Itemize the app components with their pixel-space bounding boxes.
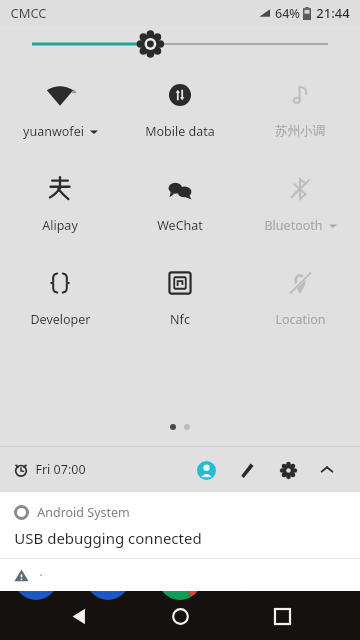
button[interactable]: Edit bbox=[230, 453, 264, 487]
staticText: WeChat bbox=[157, 217, 203, 234]
button[interactable]: Brightness bbox=[0, 26, 360, 62]
staticText: Nfc bbox=[170, 311, 190, 328]
button[interactable]: WeChat bbox=[120, 170, 240, 238]
button[interactable]: Fri 07:00 bbox=[14, 461, 86, 478]
staticText: Fri 07:00 bbox=[35, 461, 86, 478]
staticText: 21:44 bbox=[316, 4, 350, 22]
staticText: USB debugging connected bbox=[14, 528, 202, 548]
button[interactable]: 苏州小调 bbox=[240, 76, 360, 143]
staticText: 苏州小调 bbox=[275, 123, 325, 139]
button[interactable]: Bluetooth bbox=[240, 170, 360, 238]
button[interactable]: yuanwofei bbox=[0, 76, 120, 144]
button[interactable]: Back bbox=[54, 592, 102, 640]
staticText: Bluetooth bbox=[264, 217, 323, 234]
button[interactable]: User bbox=[189, 453, 223, 487]
button[interactable]: Location bbox=[240, 264, 360, 332]
staticText: yuanwofei bbox=[23, 123, 84, 140]
button[interactable]: Android System bbox=[0, 492, 360, 558]
button[interactable]: Recents bbox=[258, 592, 306, 640]
staticText: · bbox=[39, 567, 43, 583]
button[interactable]: Mobile data bbox=[120, 76, 240, 144]
staticText: Location bbox=[275, 311, 326, 328]
staticText: Alipay bbox=[42, 217, 78, 234]
button[interactable]: Settings bbox=[271, 453, 305, 487]
button[interactable]: Developer bbox=[0, 264, 120, 332]
staticText: Mobile data bbox=[145, 123, 215, 140]
button[interactable]: Alipay bbox=[0, 170, 120, 238]
staticText: 64% bbox=[275, 5, 300, 22]
staticText: CMCC bbox=[10, 4, 47, 22]
staticText: Developer bbox=[30, 311, 91, 328]
button[interactable]: Collapse bbox=[312, 455, 342, 485]
button[interactable]: Home bbox=[156, 592, 204, 640]
button[interactable]: Nfc bbox=[120, 264, 240, 332]
button[interactable]: · bbox=[0, 559, 360, 591]
staticText: Android System bbox=[37, 504, 130, 521]
